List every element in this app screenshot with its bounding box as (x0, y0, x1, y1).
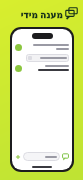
button[interactable]: Attach (15, 154, 21, 160)
button[interactable] (15, 44, 69, 51)
button[interactable] (23, 152, 60, 161)
button[interactable] (15, 54, 69, 62)
button[interactable]: Send (62, 153, 69, 160)
staticText: מענה מידי (20, 8, 63, 20)
button[interactable] (15, 65, 69, 72)
button[interactable]: Chat (65, 7, 78, 20)
